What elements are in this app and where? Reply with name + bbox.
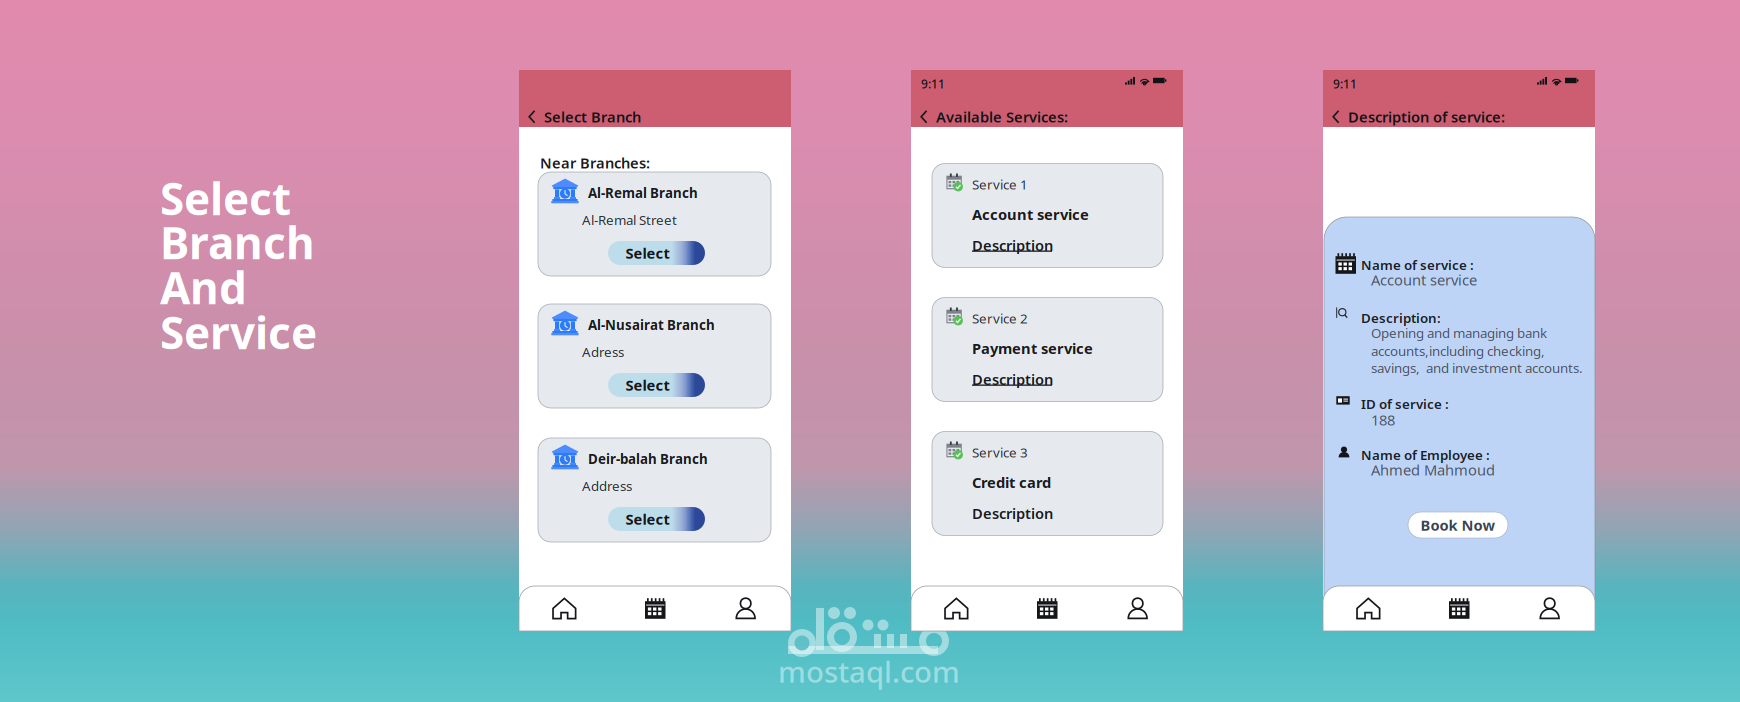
staticText: And — [160, 258, 247, 316]
button[interactable]: Select — [608, 507, 705, 531]
staticText: Al-Remal Branch — [588, 184, 698, 202]
staticText: Name of service : — [1361, 256, 1474, 274]
staticText: Payment service — [972, 338, 1093, 358]
staticText: 9:11 — [921, 76, 945, 92]
staticText: Description — [972, 503, 1053, 523]
staticText: 188 — [1371, 410, 1395, 429]
staticText: Al-Nusairat Branch — [588, 316, 715, 334]
staticText: Select — [625, 509, 669, 529]
staticText: Branch — [160, 213, 315, 271]
staticText: Description of service: — [1348, 107, 1505, 126]
staticText: ID of service : — [1361, 395, 1449, 413]
staticText: Description — [972, 235, 1053, 255]
button[interactable]: Description — [972, 235, 1053, 255]
staticText: Select — [625, 243, 669, 263]
staticText: Description — [972, 369, 1053, 389]
staticText: Credit card — [972, 472, 1051, 492]
button[interactable]: Description — [972, 369, 1053, 389]
staticText: Ahmed Mahmoud — [1371, 460, 1495, 479]
button[interactable]: Description — [972, 503, 1053, 523]
button[interactable]: Home — [911, 586, 1002, 631]
staticText: savings, and investment accounts. — [1371, 359, 1583, 377]
staticText: mostaql.com — [778, 652, 960, 691]
button[interactable]: Select Branch — [528, 105, 653, 128]
staticText: Service 2 — [972, 309, 1028, 327]
button[interactable]: Select — [608, 373, 705, 397]
button[interactable]: Home — [519, 586, 610, 631]
staticText: Available Services: — [936, 107, 1068, 126]
staticText: Account service — [972, 204, 1089, 224]
staticText: Al-Remal Street — [582, 211, 677, 229]
button[interactable]: Available Services: — [920, 105, 1080, 128]
button[interactable]: Profile — [1092, 586, 1183, 631]
staticText: Near Branches: — [540, 153, 650, 172]
staticText: Book Now — [1420, 515, 1495, 535]
staticText: Service 3 — [972, 443, 1028, 461]
button[interactable]: Appointments — [1414, 586, 1504, 631]
staticText: 9:11 — [1333, 76, 1357, 92]
staticText: Service 1 — [972, 175, 1028, 193]
button[interactable]: Profile — [1504, 586, 1595, 631]
staticText: Service — [160, 303, 317, 361]
staticText: Adress — [582, 343, 624, 361]
button[interactable]: Home — [1323, 586, 1414, 631]
button[interactable]: Appointments — [610, 586, 700, 631]
button[interactable]: Select — [608, 241, 705, 265]
staticText: Account service — [1371, 270, 1477, 289]
button[interactable]: Book Now — [1408, 512, 1508, 538]
button[interactable]: Profile — [700, 586, 791, 631]
staticText: Address — [582, 477, 632, 495]
staticText: Select — [625, 375, 669, 395]
staticText: Deir-balah Branch — [588, 450, 708, 468]
button[interactable]: Description of service: — [1332, 105, 1517, 128]
staticText: Name of Employee : — [1361, 446, 1490, 464]
staticText: Description: — [1361, 309, 1441, 327]
staticText: Select — [160, 169, 291, 227]
staticText: Opening and managing bank — [1371, 324, 1547, 342]
staticText: accounts,including checking, — [1371, 342, 1545, 360]
button[interactable]: Appointments — [1002, 586, 1092, 631]
staticText: Select Branch — [544, 107, 641, 126]
